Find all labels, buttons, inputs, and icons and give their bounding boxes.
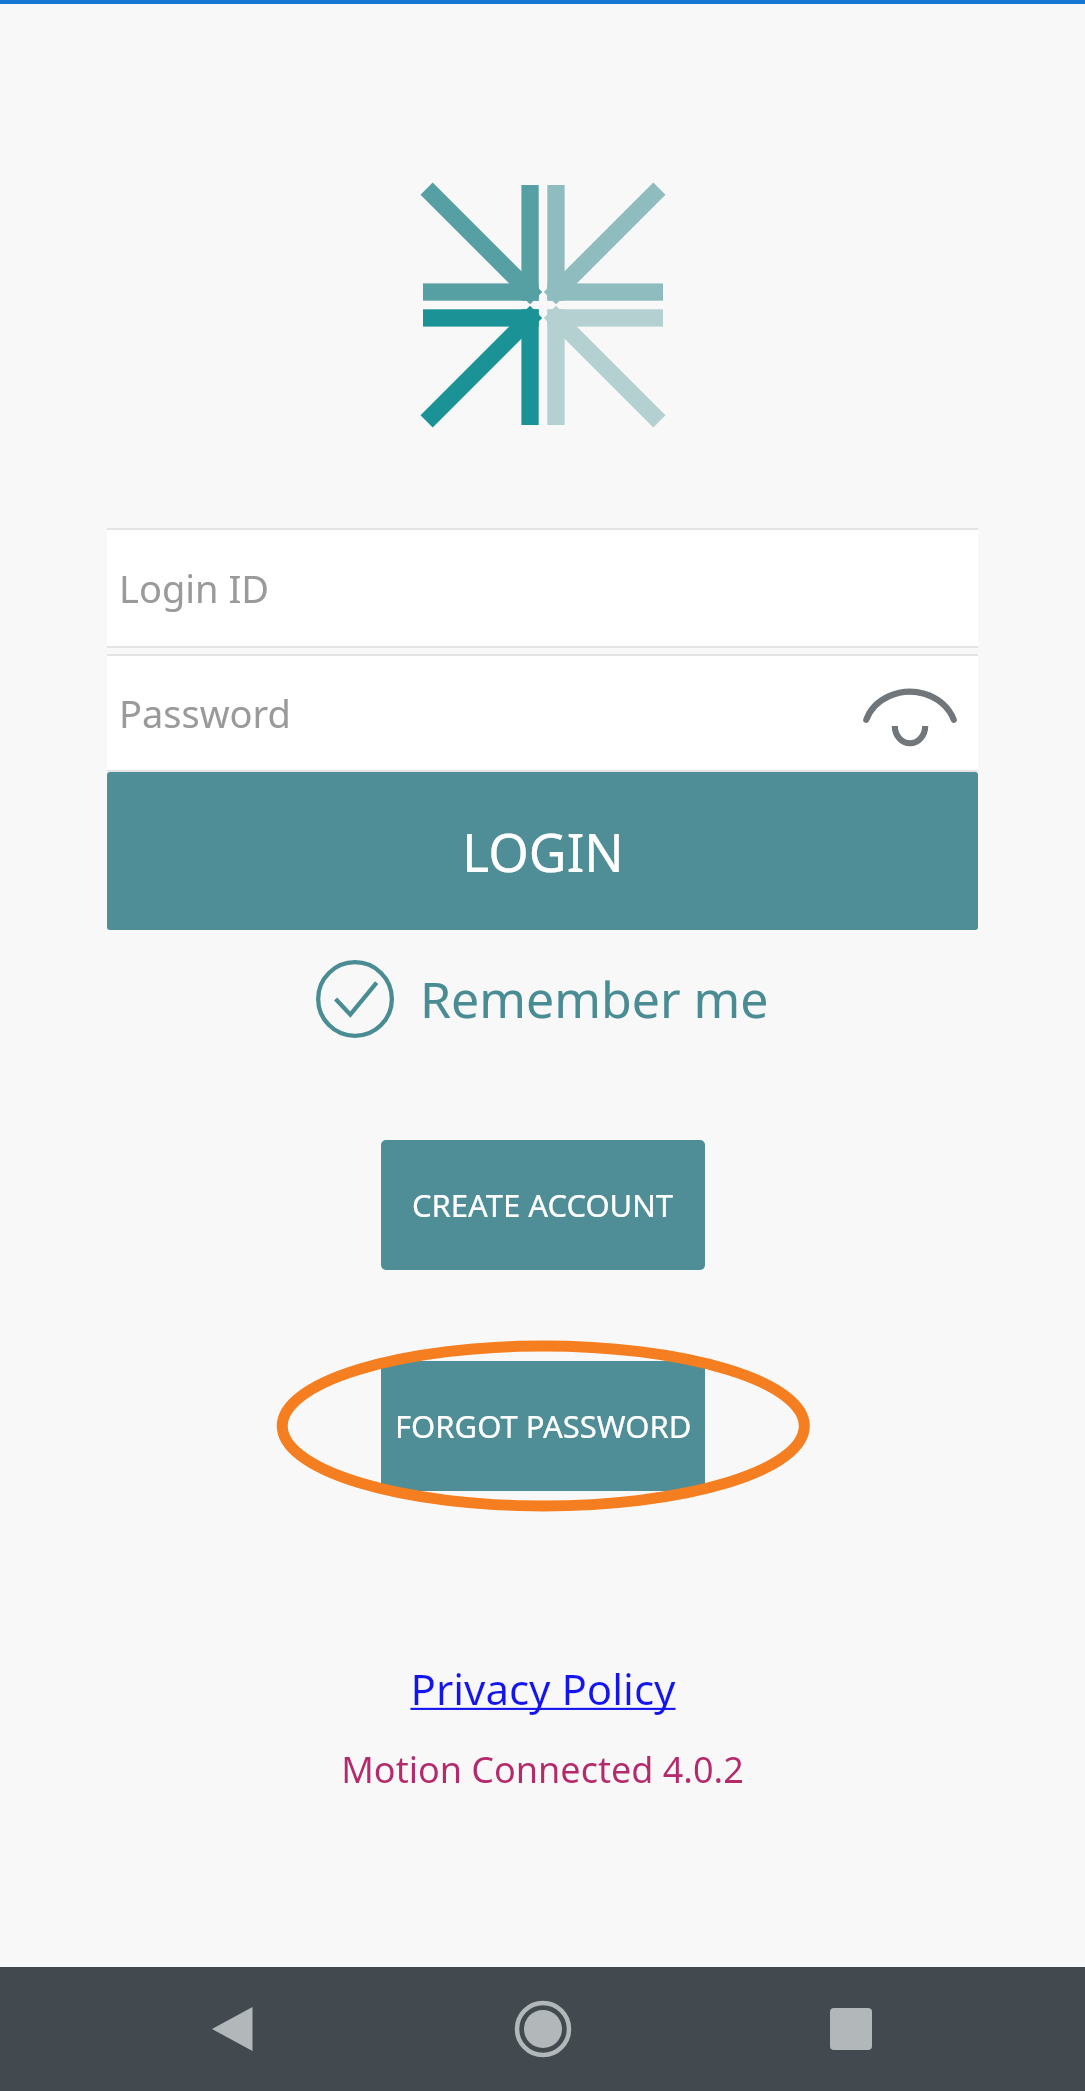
button[interactable]: Show password <box>862 677 958 749</box>
staticText: Motion Connected 4.0.2 <box>341 1745 744 1794</box>
button[interactable]: Home <box>468 1967 618 2091</box>
button[interactable]: LOGIN <box>107 772 978 930</box>
staticText: Privacy Policy <box>410 1660 676 1717</box>
staticText: Remember me <box>420 965 769 1033</box>
button[interactable]: Password <box>107 654 978 772</box>
staticText: Login ID <box>119 562 270 614</box>
button[interactable]: Privacy Policy <box>400 1654 686 1723</box>
button[interactable]: Remember me <box>308 954 777 1044</box>
button[interactable]: Login ID <box>107 528 978 648</box>
button[interactable]: FORGOT PASSWORD <box>381 1361 705 1491</box>
staticText: CREATE ACCOUNT <box>412 1184 674 1226</box>
button[interactable]: Back <box>159 1967 309 2091</box>
staticText: Password <box>119 687 291 739</box>
button[interactable]: CREATE ACCOUNT <box>381 1140 705 1270</box>
staticText: FORGOT PASSWORD <box>395 1405 692 1447</box>
staticText: LOGIN <box>462 816 624 887</box>
button[interactable]: Recent apps <box>776 1967 926 2091</box>
